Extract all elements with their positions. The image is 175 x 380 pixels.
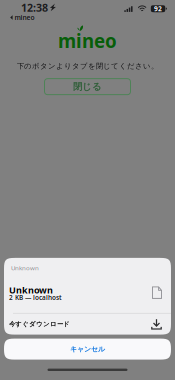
- staticText: 下のボタンよりタブを閉じてください。: [17, 61, 158, 71]
- button[interactable]: 今すぐダウンロード: [4, 314, 171, 335]
- staticText: 92: [154, 4, 162, 13]
- staticText: 今すぐダウンロード: [9, 320, 70, 328]
- staticText: mineo: [14, 13, 34, 22]
- button[interactable]: 閉じる: [44, 79, 130, 95]
- button[interactable]: Unknown: [4, 278, 171, 313]
- staticText: 閉じる: [73, 81, 102, 93]
- staticText: キャンセル: [70, 345, 105, 353]
- button[interactable]: mineo: [0, 14, 175, 21]
- staticText: Unknown: [9, 284, 53, 296]
- staticText: 2 KB — localhost: [9, 293, 62, 302]
- staticText: mineo: [58, 28, 117, 53]
- button[interactable]: キャンセル: [4, 339, 171, 360]
- staticText: 12:38: [21, 0, 48, 15]
- staticText: Unknown: [11, 264, 39, 272]
